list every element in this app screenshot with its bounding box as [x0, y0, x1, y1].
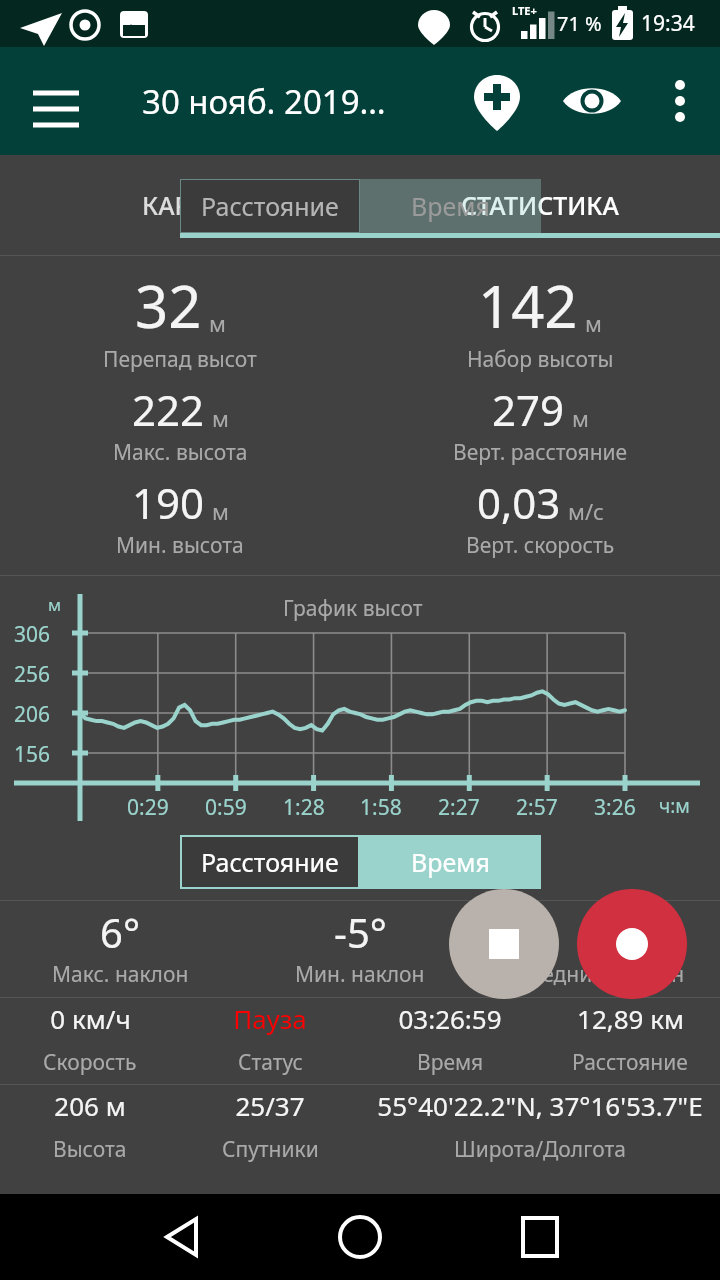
- staticText: Расстояние: [201, 845, 339, 879]
- button[interactable]: 190: [0, 474, 360, 567]
- staticText: м: [585, 308, 602, 338]
- staticText: Статус: [238, 1048, 303, 1077]
- button[interactable]: Stop recording: [449, 889, 559, 999]
- button[interactable]: Record: [577, 889, 687, 999]
- staticText: 3:26: [594, 793, 636, 822]
- button[interactable]: 03:26:59: [360, 998, 540, 1084]
- staticText: 12,89 км: [577, 1001, 684, 1036]
- staticText: Время: [411, 845, 490, 879]
- staticText: Пауза: [233, 1001, 307, 1036]
- staticText: Верт. расстояние: [453, 438, 628, 467]
- staticText: м: [48, 593, 62, 616]
- button[interactable]: 25/37: [180, 1085, 360, 1171]
- button[interactable]: 279: [360, 381, 720, 474]
- staticText: Время: [417, 1048, 484, 1077]
- staticText: 206: [14, 700, 51, 729]
- staticText: Макс. высота: [113, 438, 248, 467]
- staticText: 206 м: [54, 1088, 126, 1123]
- button[interactable]: Recents: [505, 1202, 575, 1272]
- button[interactable]: СТАТИСТИКА: [360, 155, 720, 255]
- staticText: 279: [492, 381, 565, 438]
- staticText: 306: [14, 620, 51, 649]
- staticText: ч:м: [659, 793, 690, 819]
- staticText: 0:29: [127, 793, 169, 822]
- staticText: 222: [132, 381, 205, 438]
- staticText: Перепад высот: [103, 345, 257, 374]
- button[interactable]: -5°: [240, 901, 480, 997]
- button[interactable]: КАРТА: [0, 155, 360, 255]
- staticText: 1:28: [283, 793, 325, 822]
- staticText: 190: [132, 474, 205, 531]
- staticText: Средний наклон: [516, 960, 685, 989]
- staticText: 142: [478, 266, 578, 345]
- button[interactable]: 0 км/ч: [0, 998, 180, 1084]
- staticText: 2:27: [438, 793, 480, 822]
- button[interactable]: 222: [0, 381, 360, 474]
- staticText: 6°: [100, 905, 140, 959]
- button[interactable]: 12,89 км: [540, 998, 720, 1084]
- staticText: Расстояние: [201, 189, 339, 223]
- staticText: 71 %: [557, 10, 602, 37]
- staticText: Спутники: [222, 1135, 319, 1164]
- button[interactable]: 55°40'22.2"N, 37°16'53.7"E: [360, 1085, 720, 1171]
- staticText: м: [572, 403, 589, 433]
- staticText: 2:57: [516, 793, 558, 822]
- staticText: Расстояние: [572, 1048, 688, 1077]
- button[interactable]: 6°: [0, 901, 240, 997]
- button[interactable]: Back: [145, 1202, 215, 1272]
- staticText: Скорость: [43, 1048, 137, 1077]
- staticText: 30 нояб. 2019…: [142, 79, 386, 124]
- button[interactable]: Средний наклон: [480, 901, 720, 997]
- staticText: 55°40'22.2"N, 37°16'53.7"E: [377, 1088, 703, 1123]
- button[interactable]: Visibility: [558, 67, 626, 135]
- staticText: м: [212, 403, 229, 433]
- staticText: Макс. наклон: [52, 960, 189, 989]
- button[interactable]: 0,03: [360, 474, 720, 567]
- staticText: 03:26:59: [398, 1001, 502, 1036]
- staticText: м/с: [568, 496, 604, 526]
- button[interactable]: 32: [0, 266, 360, 381]
- staticText: 1:58: [360, 793, 402, 822]
- staticText: 0 км/ч: [50, 1001, 131, 1036]
- staticText: Мин. высота: [116, 531, 244, 560]
- staticText: Высота: [53, 1135, 127, 1164]
- button[interactable]: Расстояние: [180, 835, 360, 889]
- staticText: Широта/Долгота: [454, 1135, 626, 1164]
- staticText: м: [209, 308, 226, 338]
- staticText: КАРТА: [142, 188, 219, 222]
- staticText: -5°: [334, 905, 387, 959]
- button[interactable]: Время: [360, 835, 541, 889]
- staticText: Мин. наклон: [295, 960, 425, 989]
- staticText: 256: [14, 660, 51, 689]
- staticText: 25/37: [235, 1088, 305, 1123]
- staticText: LTE+: [512, 3, 537, 18]
- staticText: м: [212, 496, 229, 526]
- staticText: СТАТИСТИКА: [461, 188, 619, 222]
- button[interactable]: Пауза: [180, 998, 360, 1084]
- staticText: Набор высоты: [467, 345, 614, 374]
- button[interactable]: Add waypoint: [463, 67, 531, 135]
- button[interactable]: Home: [325, 1202, 395, 1272]
- staticText: 156: [14, 740, 51, 769]
- staticText: Время: [411, 189, 490, 223]
- button[interactable]: 142: [360, 266, 720, 381]
- button[interactable]: 206 м: [0, 1085, 180, 1171]
- staticText: 19:34: [641, 9, 695, 38]
- staticText: 0:59: [205, 793, 247, 822]
- button[interactable]: More options: [646, 67, 714, 135]
- staticText: 32: [135, 266, 202, 345]
- button[interactable]: Menu: [22, 67, 90, 135]
- staticText: График высот: [283, 594, 423, 623]
- staticText: 0,03: [477, 474, 561, 531]
- staticText: Верт. скорость: [466, 531, 615, 560]
